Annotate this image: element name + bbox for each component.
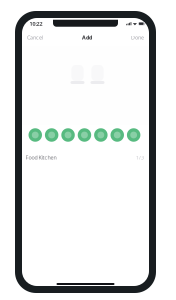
button[interactable]: Colour option (78, 128, 91, 142)
staticText: Food Kitchen (25, 154, 56, 161)
button[interactable]: Colour option (110, 128, 124, 142)
button[interactable]: Cancel (26, 31, 44, 44)
staticText: Done (131, 34, 144, 41)
staticText: Cancel (27, 34, 43, 41)
button[interactable]: Done (130, 31, 145, 44)
button[interactable]: Colour option (127, 128, 140, 142)
staticText: 1/3 (136, 154, 144, 161)
button[interactable]: Colour option (61, 128, 75, 142)
staticText: 10:22 (29, 20, 42, 27)
button[interactable]: Colour option (94, 128, 108, 142)
button[interactable]: Colour option (28, 128, 42, 142)
button[interactable]: Colour option (45, 128, 58, 142)
staticText: Add (82, 34, 92, 41)
button[interactable]: Food Kitchen (22, 145, 149, 169)
